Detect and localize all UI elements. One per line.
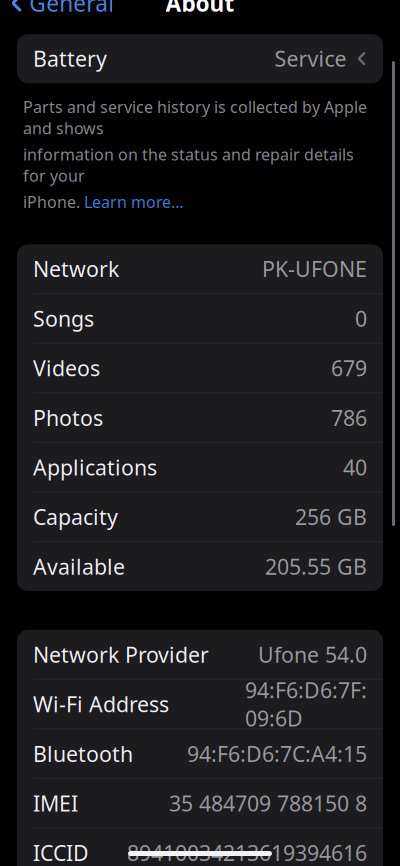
staticText: 94:F6:D6:7C:A4:15 xyxy=(187,739,367,768)
staticText: 35 484709 788150 8 xyxy=(169,789,367,817)
staticText: 256 GB xyxy=(295,503,367,531)
staticText: 40 xyxy=(343,453,367,481)
staticText: Battery xyxy=(33,44,107,73)
staticText: PK-UFONE xyxy=(262,255,367,283)
button[interactable]: General xyxy=(0,0,114,24)
staticText: Applications xyxy=(33,453,157,481)
staticText: Available xyxy=(33,552,125,581)
staticText: Wi-Fi Address xyxy=(33,690,169,718)
staticText: Capacity xyxy=(33,503,118,531)
staticText: Learn more… xyxy=(84,191,184,212)
staticText: 679 xyxy=(331,354,367,382)
staticText: 89410034213619394616 xyxy=(127,839,367,866)
staticText: Service xyxy=(274,44,346,73)
button[interactable]: Learn more… xyxy=(84,191,184,212)
staticText: iPhone. xyxy=(23,191,84,212)
staticText: 786 xyxy=(331,403,367,432)
staticText: Songs xyxy=(33,304,94,333)
staticText: Ufone 54.0 xyxy=(258,640,367,669)
staticText: Network xyxy=(33,255,119,283)
staticText: 205.55 GB xyxy=(265,552,367,581)
staticText: IMEI xyxy=(33,789,78,817)
staticText: General xyxy=(29,0,114,18)
staticText: 0 xyxy=(355,304,367,333)
staticText: Bluetooth xyxy=(33,739,133,768)
staticText: Network Provider xyxy=(33,640,209,669)
staticText: Videos xyxy=(33,354,100,382)
staticText: 94:F6:D6:7F:09:6D xyxy=(245,676,367,732)
staticText: ICCID xyxy=(33,839,89,866)
staticText: Parts and service history is collected b… xyxy=(23,96,367,139)
staticText: information on the status and repair det… xyxy=(23,144,354,186)
staticText: Photos xyxy=(33,403,103,432)
button[interactable]: Battery xyxy=(17,34,383,83)
staticText: About xyxy=(165,0,234,18)
